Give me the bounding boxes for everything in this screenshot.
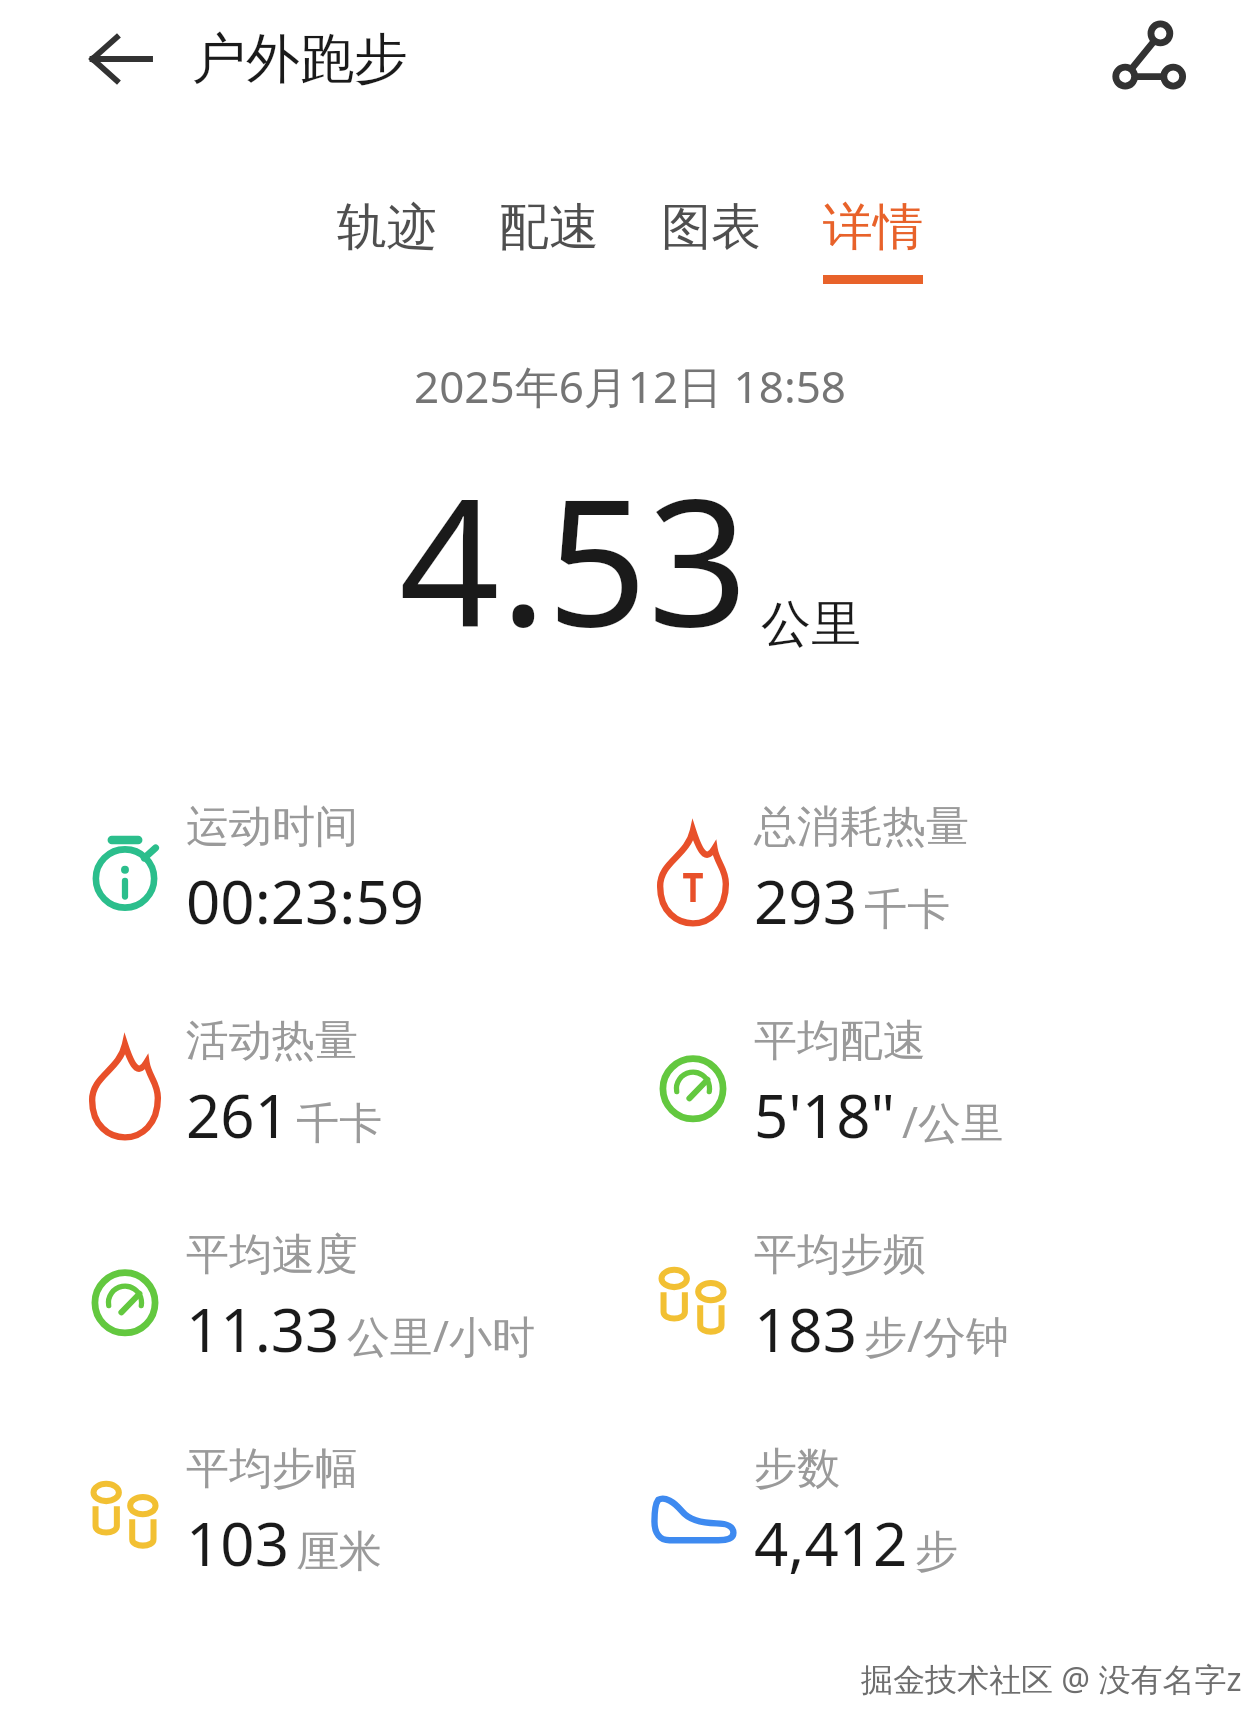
button[interactable]: 图表 — [657, 196, 765, 284]
staticText: 活动热量 — [186, 1014, 358, 1068]
staticText: /公里 — [902, 1092, 1004, 1151]
staticText: 千卡 — [864, 883, 950, 937]
staticText: 293 — [754, 860, 857, 942]
button[interactable]: 运动时间 — [0, 764, 630, 978]
button[interactable]: 总消耗热量 — [630, 764, 1260, 978]
staticText: 5'18" — [754, 1074, 895, 1156]
staticText: 运动时间 — [186, 800, 358, 854]
staticText: 00:23:59 — [186, 860, 425, 942]
staticText: 总消耗热量 — [754, 800, 969, 854]
staticText: 轨迹 — [337, 196, 437, 259]
staticText: 平均步频 — [754, 1228, 926, 1282]
staticText: 2025年6月12日 18:58 — [0, 356, 1260, 416]
button[interactable]: 详情 — [819, 196, 927, 284]
staticText: 4,412 — [754, 1502, 908, 1584]
button[interactable]: 平均步频 — [630, 1192, 1260, 1406]
staticText: 步/分钟 — [864, 1306, 1009, 1365]
staticText: 配速 — [499, 196, 599, 259]
staticText: 步数 — [754, 1442, 840, 1496]
button[interactable]: 平均速度 — [0, 1192, 630, 1406]
staticText: 户外跑步 — [192, 25, 408, 93]
staticText: 掘金技术社区 @ 没有名字z — [861, 1657, 1242, 1701]
staticText: 图表 — [661, 196, 761, 259]
staticText: 公里 — [761, 593, 861, 656]
staticText: 103 — [186, 1502, 289, 1584]
staticText: 平均速度 — [186, 1228, 358, 1282]
button[interactable]: 平均步幅 — [0, 1406, 630, 1620]
button[interactable]: 步数 — [630, 1406, 1260, 1620]
button[interactable]: 平均配速 — [630, 978, 1260, 1192]
staticText: 平均配速 — [754, 1014, 926, 1068]
button[interactable]: Back — [74, 13, 166, 105]
staticText: 11.33 — [186, 1288, 340, 1370]
staticText: 千卡 — [296, 1097, 382, 1151]
button[interactable]: 轨迹 — [333, 196, 441, 284]
staticText: 261 — [186, 1074, 289, 1156]
staticText: 4.53 — [399, 438, 749, 678]
staticText: 详情 — [823, 196, 923, 259]
button[interactable]: Share — [1094, 7, 1198, 111]
staticText: 平均步幅 — [186, 1442, 358, 1496]
staticText: 183 — [754, 1288, 857, 1370]
staticText: 公里/小时 — [347, 1306, 535, 1365]
button[interactable]: 配速 — [495, 196, 603, 284]
staticText: 厘米 — [296, 1525, 382, 1579]
button[interactable]: 活动热量 — [0, 978, 630, 1192]
staticText: 步 — [915, 1525, 958, 1579]
